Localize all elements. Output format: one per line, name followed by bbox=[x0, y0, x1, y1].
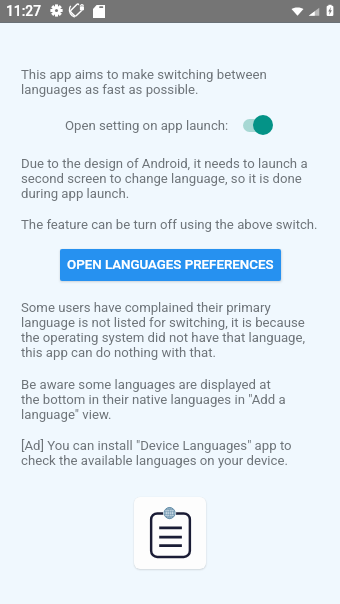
staticText: [Ad] You can install "Device Languages" … bbox=[21, 438, 292, 468]
button[interactable]: Open setting on app launch bbox=[243, 115, 273, 135]
button[interactable]: OPEN LANGUAGES PREFERENCES bbox=[60, 249, 281, 281]
staticText: Be aware some languages are displayed at… bbox=[21, 377, 286, 422]
staticText: OPEN LANGUAGES PREFERENCES bbox=[67, 257, 274, 273]
staticText: This app aims to make switching between … bbox=[21, 67, 267, 97]
staticText: The feature can be turn off using the ab… bbox=[21, 217, 318, 232]
staticText: Open setting on app launch: bbox=[65, 118, 229, 133]
staticText: 11:27 bbox=[6, 3, 42, 19]
staticText: Due to the design of Android, it needs t… bbox=[21, 156, 308, 201]
staticText: Some users have complained their primary… bbox=[21, 300, 306, 360]
